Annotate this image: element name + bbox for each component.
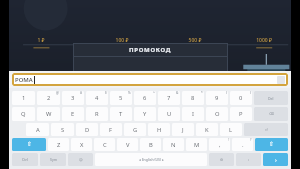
button[interactable]: 6: [134, 91, 156, 105]
button[interactable]: A: [26, 123, 49, 136]
button[interactable]: O: [206, 107, 228, 121]
button[interactable]: Sym: [40, 153, 66, 166]
button[interactable]: 7: [158, 91, 180, 105]
button[interactable]: K: [196, 123, 218, 136]
staticText: ⌫: [269, 112, 274, 116]
staticText: C: [103, 141, 107, 149]
staticText: .: [242, 141, 244, 149]
staticText: F: [109, 126, 113, 134]
staticText: ☺: [79, 158, 83, 162]
button[interactable]: I: [182, 107, 204, 121]
button[interactable]: РОМА: [12, 73, 288, 86]
staticText: Sym: [50, 157, 57, 162]
button[interactable]: 4: [86, 91, 108, 105]
staticText: A: [36, 126, 40, 134]
button[interactable]: J: [172, 123, 194, 136]
button[interactable]: U: [158, 107, 180, 121]
staticText: ⇧: [269, 141, 274, 148]
button[interactable]: B: [140, 138, 161, 151]
staticText: 500 ₽: [175, 37, 215, 44]
staticText: X: [80, 141, 84, 149]
button[interactable]: V: [117, 138, 138, 151]
button[interactable]: F: [100, 123, 122, 136]
button[interactable]: Y: [134, 107, 156, 121]
staticText: ПРОМОКОД: [129, 46, 172, 54]
button[interactable]: 8: [182, 91, 204, 105]
button[interactable]: T: [110, 107, 132, 121]
button[interactable]: 3: [62, 91, 84, 105]
staticText: W: [46, 110, 52, 118]
button[interactable]: Shift right: [255, 138, 288, 151]
button[interactable]: L: [220, 123, 242, 136]
button[interactable]: .: [232, 138, 253, 151]
button[interactable]: Right: [263, 153, 288, 166]
staticText: 3: [71, 94, 75, 102]
button[interactable]: W: [37, 107, 60, 121]
button[interactable]: G: [124, 123, 146, 136]
staticText: ‹: [248, 157, 250, 162]
staticText: 9: [215, 94, 219, 102]
staticText: Z: [57, 141, 61, 149]
staticText: %: [128, 91, 131, 95]
staticText: E: [71, 110, 75, 118]
staticText: ◂ English (US) ▸: [139, 157, 164, 162]
staticText: ⏎: [265, 128, 268, 132]
button[interactable]: Shift: [12, 138, 46, 151]
button[interactable]: Z: [48, 138, 69, 151]
button[interactable]: N: [163, 138, 184, 151]
staticText: 8: [191, 94, 195, 102]
button[interactable]: 5: [110, 91, 132, 105]
staticText: *: [201, 91, 203, 95]
button[interactable]: Q: [12, 107, 35, 121]
button[interactable]: 0: [230, 91, 252, 105]
button[interactable]: D: [76, 123, 98, 136]
button[interactable]: R: [86, 107, 108, 121]
button[interactable]: Delete: [254, 91, 288, 105]
button[interactable]: Ctrl: [12, 153, 38, 166]
staticText: R: [95, 110, 99, 118]
staticText: B: [149, 141, 153, 149]
staticText: ⚙: [220, 158, 224, 162]
staticText: 4: [95, 94, 99, 102]
staticText: ⇧: [27, 141, 32, 148]
button[interactable]: C: [94, 138, 115, 151]
staticText: 1 ₽: [21, 37, 61, 44]
staticText: G: [133, 126, 138, 134]
button[interactable]: X: [71, 138, 92, 151]
staticText: &: [176, 91, 179, 95]
button[interactable]: 1: [12, 91, 35, 105]
staticText: РОМА: [15, 76, 33, 84]
staticText: 6: [143, 94, 147, 102]
staticText: P: [239, 110, 243, 118]
staticText: #: [80, 91, 83, 95]
staticText: Q: [21, 110, 26, 118]
staticText: (: [226, 91, 227, 95]
button[interactable]: Settings: [209, 153, 234, 166]
button[interactable]: 2: [37, 91, 60, 105]
button[interactable]: E: [62, 107, 84, 121]
staticText: J: [182, 126, 184, 134]
button[interactable]: S: [51, 123, 74, 136]
staticText: N: [171, 141, 176, 149]
button[interactable]: H: [148, 123, 170, 136]
staticText: I: [192, 110, 194, 118]
button[interactable]: ◂ English (US) ▸: [95, 153, 207, 166]
staticText: 2: [47, 94, 51, 102]
staticText: 7: [167, 94, 171, 102]
staticText: ,: [219, 141, 221, 149]
staticText: Y: [143, 110, 147, 118]
staticText: ?: [250, 138, 252, 142]
staticText: ^: [153, 91, 155, 95]
button[interactable]: M: [186, 138, 207, 151]
button[interactable]: P: [230, 107, 252, 121]
button[interactable]: ,: [209, 138, 230, 151]
staticText: H: [157, 126, 162, 134]
staticText: $: [105, 91, 107, 95]
button[interactable]: 9: [206, 91, 228, 105]
button[interactable]: Backspace: [254, 107, 288, 121]
staticText: O: [215, 110, 220, 118]
button[interactable]: Emoji: [68, 153, 93, 166]
